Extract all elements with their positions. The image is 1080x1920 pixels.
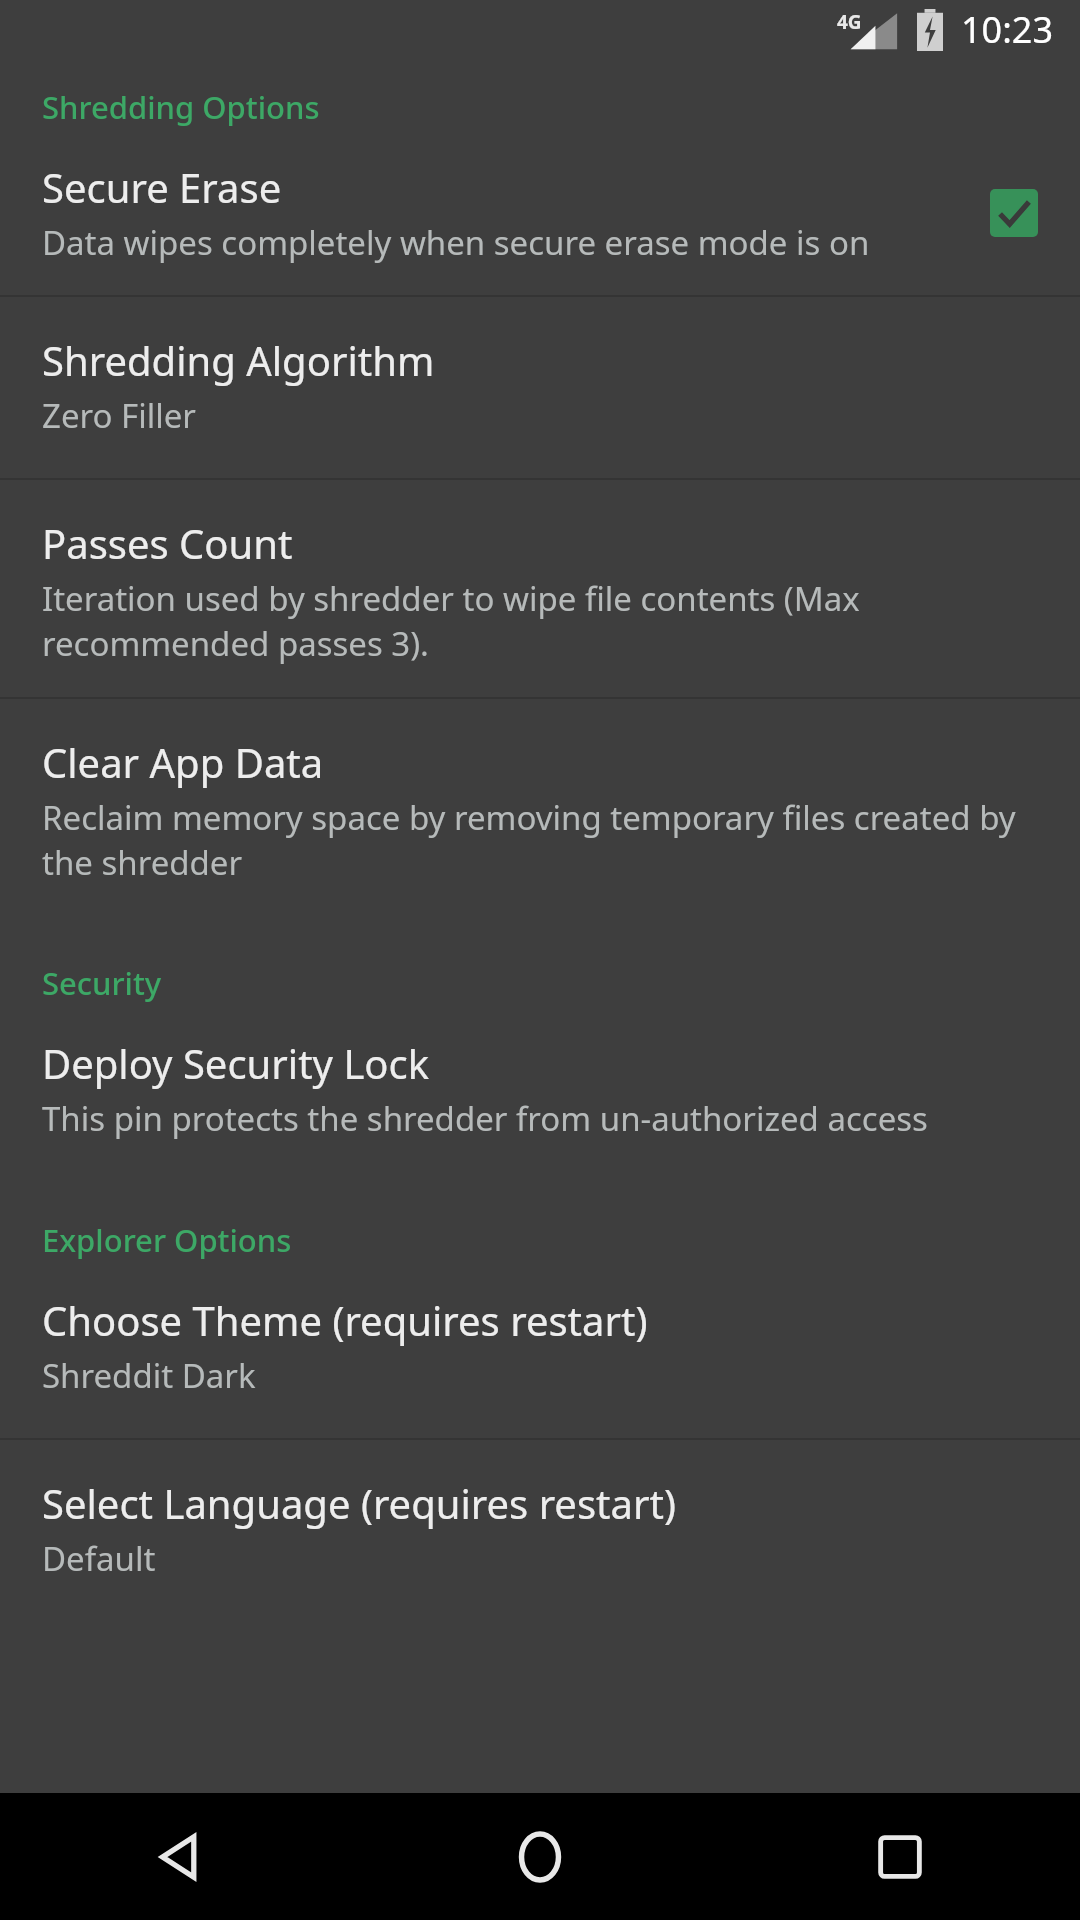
- staticText: Shredding Options: [42, 86, 1080, 128]
- button[interactable]: Clear App Data: [0, 699, 1080, 914]
- staticText: Security: [42, 962, 1080, 1004]
- staticText: Secure Erase: [42, 160, 282, 214]
- button[interactable]: Deploy Security Lock: [0, 1004, 1080, 1171]
- button[interactable]: Secure Erase: [0, 128, 1080, 295]
- button[interactable]: Recent apps: [720, 1793, 1080, 1920]
- button[interactable]: Shredding Algorithm: [0, 297, 1080, 478]
- staticText: This pin protects the shredder from un-a…: [42, 1096, 928, 1141]
- staticText: Iteration used by shredder to wipe file …: [42, 576, 1038, 665]
- staticText: Shredding Algorithm: [42, 333, 435, 387]
- button[interactable]: Secure Erase toggle: [990, 189, 1038, 237]
- staticText: Zero Filler: [42, 393, 196, 438]
- staticText: 10:23: [961, 5, 1054, 54]
- staticText: Passes Count: [42, 516, 293, 570]
- staticText: Clear App Data: [42, 735, 324, 789]
- staticText: Deploy Security Lock: [42, 1036, 430, 1090]
- staticText: Explorer Options: [42, 1219, 1080, 1261]
- button[interactable]: Select Language (requires restart): [0, 1440, 1080, 1601]
- staticText: 4G: [837, 9, 862, 35]
- staticText: Select Language (requires restart): [42, 1476, 676, 1530]
- button[interactable]: Choose Theme (requires restart): [0, 1261, 1080, 1438]
- staticText: Data wipes completely when secure erase …: [42, 220, 870, 265]
- staticText: Shreddit Dark: [42, 1353, 256, 1398]
- button[interactable]: Home: [360, 1793, 720, 1920]
- staticText: Choose Theme (requires restart): [42, 1293, 648, 1347]
- staticText: Default: [42, 1536, 156, 1581]
- button[interactable]: Passes Count: [0, 480, 1080, 697]
- button[interactable]: Back: [0, 1793, 360, 1920]
- staticText: Reclaim memory space by removing tempora…: [42, 795, 1038, 884]
